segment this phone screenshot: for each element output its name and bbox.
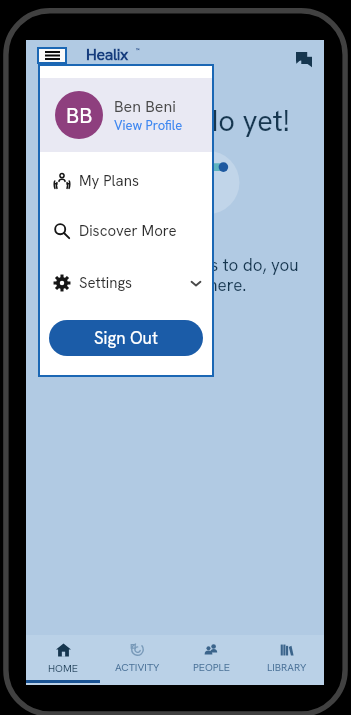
button[interactable]: Messages (296, 52, 312, 67)
staticText: PEOPLE (193, 660, 230, 674)
button[interactable]: Open navigation menu (39, 49, 65, 62)
staticText: ACTIVITY (115, 660, 160, 674)
staticText: BB (66, 101, 93, 130)
button[interactable]: My Plans (40, 156, 212, 206)
staticText: Ben Beni (114, 96, 176, 117)
button[interactable]: Discover More (40, 206, 212, 256)
button[interactable]: Sign Out (49, 320, 203, 356)
button[interactable]: HOME (26, 638, 100, 679)
staticText: HOME (48, 661, 78, 675)
staticText: Sign Out (94, 327, 158, 349)
staticText: My Plans (79, 171, 139, 191)
staticText: LIBRARY (267, 660, 307, 674)
staticText: Healix (86, 44, 128, 65)
staticText: Nothing to do yet! (60, 102, 290, 140)
staticText: When you have things to do, you will see… (52, 254, 299, 296)
button[interactable]: ACTIVITY (100, 638, 174, 679)
button[interactable]: LIBRARY (249, 638, 324, 679)
button[interactable]: Settings (40, 256, 212, 309)
staticText: ™ (136, 47, 140, 54)
staticText: Settings (79, 273, 133, 293)
button[interactable]: View Profile (114, 117, 183, 134)
staticText: Discover More (79, 221, 177, 241)
button[interactable]: PEOPLE (174, 638, 249, 679)
